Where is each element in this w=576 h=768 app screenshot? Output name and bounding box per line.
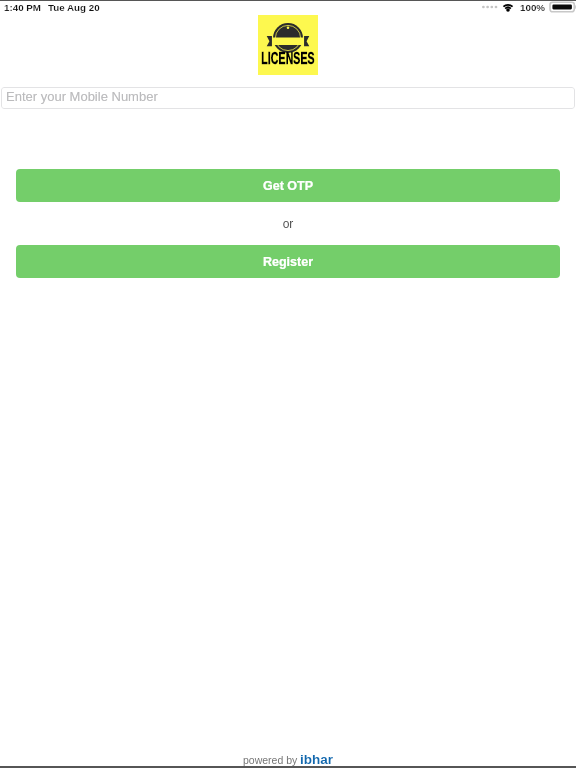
button[interactable]: Register	[16, 245, 560, 278]
other: Wi-Fi connected	[501, 2, 515, 13]
staticText: or	[0, 217, 576, 230]
staticText: Enter your Mobile Number	[6, 89, 158, 104]
button[interactable]: Enter your Mobile Number	[1, 87, 575, 109]
staticText: powered by	[243, 754, 298, 766]
other: Licenses logo	[258, 15, 318, 75]
staticText: LICENSES	[255, 50, 321, 68]
staticText: ibhar	[300, 752, 334, 767]
staticText: 100%	[520, 2, 546, 13]
staticText: Get OTP	[263, 179, 314, 193]
other: Battery full	[550, 1, 576, 13]
button[interactable]: Get OTP	[16, 169, 560, 202]
staticText: 1:40 PM	[4, 2, 42, 13]
staticText: Tue Aug 20	[48, 2, 100, 13]
staticText: Register	[263, 255, 314, 269]
other: Signal strength	[482, 4, 498, 10]
